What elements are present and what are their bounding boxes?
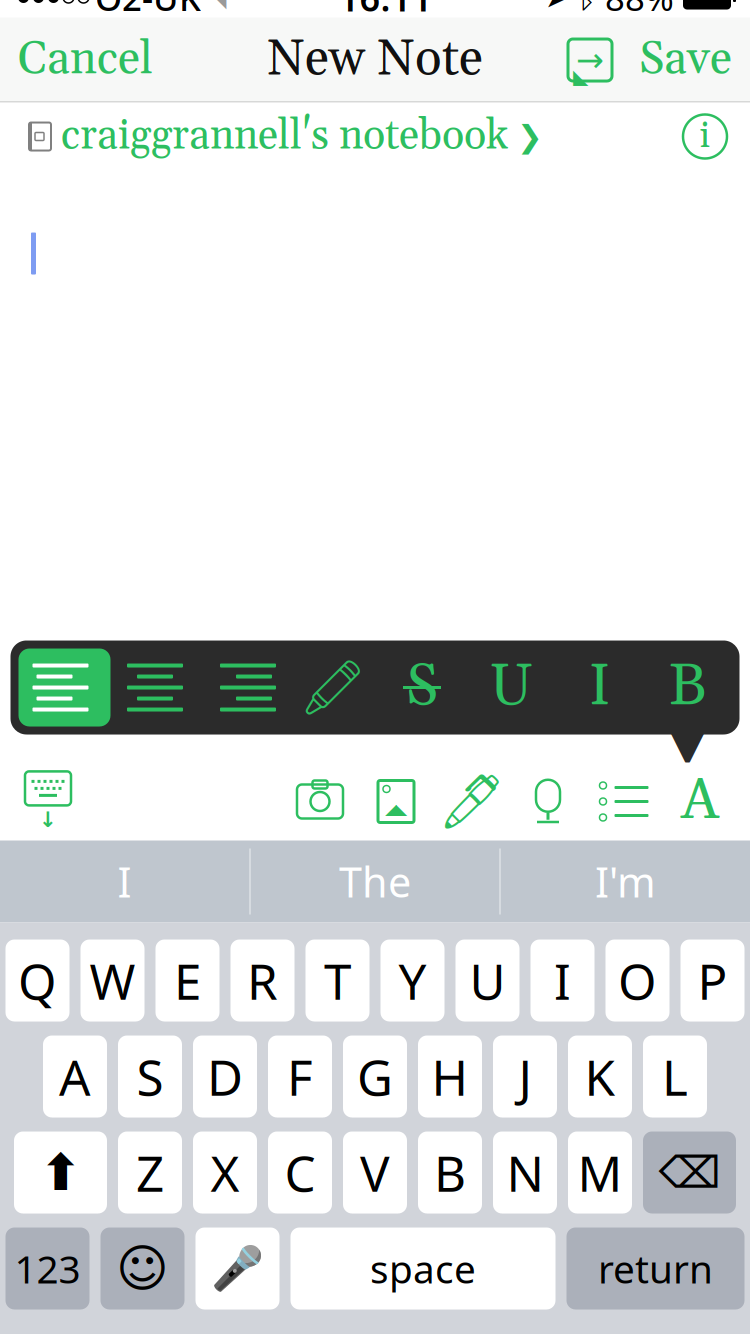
staticText: craiggrannell's notebook bbox=[61, 110, 508, 163]
button[interactable]: V bbox=[343, 1131, 407, 1213]
button[interactable]: Emoji bbox=[100, 1227, 184, 1309]
button[interactable]: The bbox=[251, 840, 499, 922]
staticText: ⌫ bbox=[658, 1147, 720, 1197]
button[interactable]: X bbox=[193, 1131, 257, 1213]
staticText: 16:11 bbox=[338, 0, 432, 21]
button[interactable]: W bbox=[80, 939, 144, 1021]
staticText: ⬆ bbox=[39, 1144, 81, 1201]
button[interactable]: return bbox=[566, 1227, 744, 1309]
staticText: X bbox=[210, 1140, 239, 1205]
staticText: S bbox=[406, 651, 438, 724]
button[interactable]: M bbox=[568, 1131, 632, 1213]
button[interactable]: Share bbox=[559, 25, 621, 95]
button[interactable]: space bbox=[290, 1227, 555, 1309]
staticText: V bbox=[360, 1140, 390, 1205]
button[interactable]: Checklist bbox=[586, 764, 662, 838]
button[interactable]: Photos bbox=[358, 764, 434, 838]
staticText: E bbox=[174, 948, 201, 1013]
button[interactable]: D bbox=[193, 1035, 257, 1117]
staticText: return bbox=[598, 1243, 713, 1294]
button[interactable]: Text formatting bbox=[662, 764, 738, 838]
button[interactable]: I bbox=[530, 939, 594, 1021]
button[interactable]: L bbox=[643, 1035, 707, 1117]
button[interactable]: G bbox=[343, 1035, 407, 1117]
button[interactable]: Camera bbox=[282, 764, 358, 838]
button[interactable]: Q bbox=[5, 939, 69, 1021]
staticText: I'm bbox=[595, 854, 656, 909]
staticText: The bbox=[339, 854, 411, 909]
button[interactable]: K bbox=[568, 1035, 632, 1117]
button[interactable]: U bbox=[455, 939, 519, 1021]
staticText: B bbox=[669, 651, 706, 724]
staticText: H bbox=[431, 1044, 468, 1109]
button[interactable]: Bold bbox=[643, 648, 731, 726]
staticText: ☺ bbox=[116, 1240, 169, 1297]
button[interactable]: E bbox=[155, 939, 219, 1021]
button[interactable]: Italic bbox=[555, 648, 643, 726]
staticText: ↓ bbox=[39, 807, 57, 832]
button[interactable]: Align left bbox=[18, 648, 110, 726]
button[interactable]: S bbox=[118, 1035, 182, 1117]
button[interactable]: Cancel bbox=[0, 18, 171, 102]
button[interactable]: Save bbox=[621, 18, 750, 102]
staticText: O2-UK bbox=[95, 0, 201, 20]
button[interactable]: Note info bbox=[672, 103, 738, 169]
staticText: C bbox=[284, 1140, 315, 1205]
staticText: 123 bbox=[14, 1243, 80, 1294]
staticText: A bbox=[59, 1044, 91, 1109]
button[interactable]: 123 bbox=[5, 1227, 89, 1309]
button[interactable]: J bbox=[493, 1035, 557, 1117]
staticText: i bbox=[699, 114, 710, 159]
button[interactable]: I bbox=[0, 840, 249, 922]
staticText: L bbox=[662, 1044, 688, 1109]
button[interactable]: Align center bbox=[110, 648, 199, 726]
staticText: M bbox=[577, 1140, 622, 1205]
button[interactable]: O bbox=[605, 939, 669, 1021]
button[interactable]: Dictation bbox=[195, 1227, 279, 1309]
button[interactable]: craiggrannell's notebook bbox=[0, 98, 543, 175]
button[interactable]: Highlight bbox=[288, 648, 377, 726]
button[interactable]: T bbox=[305, 939, 369, 1021]
staticText: 🎤 bbox=[211, 1244, 264, 1293]
staticText: Cancel bbox=[18, 31, 153, 89]
staticText: → bbox=[576, 41, 604, 79]
button[interactable]: N bbox=[493, 1131, 557, 1213]
staticText: U bbox=[469, 948, 505, 1013]
button[interactable]: Handwriting bbox=[434, 764, 510, 838]
staticText: Q bbox=[18, 948, 57, 1013]
button[interactable]: Shift bbox=[14, 1131, 107, 1213]
button[interactable]: F bbox=[268, 1035, 332, 1117]
staticText: 🖍 bbox=[299, 657, 367, 718]
button[interactable]: Underline bbox=[466, 648, 555, 726]
staticText: ◣ bbox=[573, 65, 588, 88]
staticText: N bbox=[506, 1140, 543, 1205]
button[interactable]: C bbox=[268, 1131, 332, 1213]
button[interactable]: R bbox=[230, 939, 294, 1021]
button[interactable]: Delete bbox=[643, 1131, 736, 1213]
button[interactable]: I'm bbox=[501, 840, 750, 922]
button[interactable]: Y bbox=[380, 939, 444, 1021]
button[interactable]: Audio bbox=[510, 764, 586, 838]
button[interactable]: Strikethrough bbox=[377, 648, 466, 726]
staticText: A bbox=[681, 766, 719, 837]
staticText: J bbox=[518, 1044, 531, 1109]
button[interactable]: B bbox=[418, 1131, 482, 1213]
staticText: ❯ bbox=[517, 119, 543, 154]
staticText: F bbox=[287, 1044, 313, 1109]
staticText: I bbox=[117, 854, 131, 909]
staticText: R bbox=[247, 948, 278, 1013]
staticText: New Note bbox=[267, 29, 483, 91]
button[interactable]: Z bbox=[118, 1131, 182, 1213]
staticText: K bbox=[584, 1044, 615, 1109]
button[interactable]: P bbox=[680, 939, 744, 1021]
staticText: O bbox=[618, 948, 657, 1013]
button[interactable]: Hide keyboard bbox=[8, 764, 88, 838]
button[interactable]: Align right bbox=[199, 648, 288, 726]
staticText: 🖊 bbox=[438, 771, 506, 832]
staticText: T bbox=[324, 948, 351, 1013]
button[interactable]: H bbox=[418, 1035, 482, 1117]
button[interactable]: A bbox=[43, 1035, 107, 1117]
staticText: ➤ bbox=[545, 0, 568, 13]
staticText: Save bbox=[639, 31, 732, 89]
staticText: I bbox=[588, 651, 610, 724]
